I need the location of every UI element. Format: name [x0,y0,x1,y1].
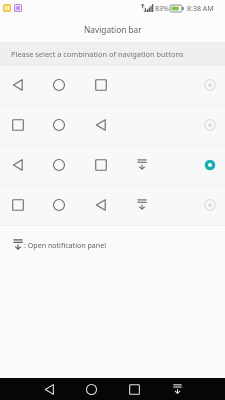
button[interactable] [0,186,225,225]
button[interactable]: Back [35,378,63,400]
button[interactable] [0,66,225,105]
staticText: Navigation bar [84,24,142,35]
button[interactable]: Recent apps [120,378,148,400]
button[interactable]: Open notification panel [163,378,191,400]
staticText: 83% [155,4,169,14]
button[interactable]: Home [77,378,105,400]
button[interactable] [0,146,225,185]
staticText: Please select a combination of navigatio… [11,49,184,59]
staticText: : Open notification panel [24,240,107,250]
button[interactable] [0,106,225,145]
staticText: 8:38 AM [187,4,214,14]
